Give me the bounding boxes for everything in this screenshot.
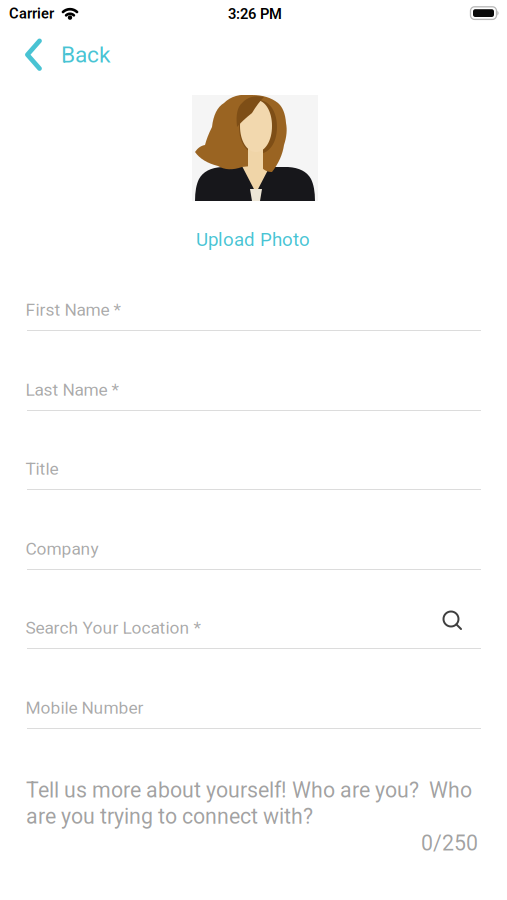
button[interactable]: Back (25, 39, 110, 71)
button[interactable]: Mobile Number (27, 684, 481, 729)
button[interactable]: Company (27, 525, 481, 570)
button[interactable]: Upload Photo (196, 229, 310, 250)
staticText: Tell us more about yourself! Who are you… (26, 778, 472, 829)
staticText: Carrier (9, 5, 54, 22)
staticText: Upload Photo (196, 229, 310, 250)
button[interactable]: Last Name * (27, 366, 481, 411)
staticText: Title (25, 459, 58, 479)
button[interactable]: Search Your Location * (27, 604, 481, 649)
staticText: Back (61, 42, 110, 68)
staticText: Search Your Location * (25, 618, 200, 638)
staticText: 3:26 PM (228, 6, 282, 22)
button[interactable]: Title (27, 445, 481, 490)
staticText: Last Name * (25, 380, 118, 400)
staticText: First Name * (25, 300, 120, 320)
staticText: Mobile Number (25, 698, 143, 718)
staticText: Company (25, 539, 98, 559)
button[interactable]: First Name * (27, 286, 481, 331)
staticText: 0/250 (421, 831, 478, 855)
button[interactable]: Tell us more about yourself! Who are you… (27, 775, 481, 865)
button[interactable]: Profile photo (192, 95, 318, 201)
